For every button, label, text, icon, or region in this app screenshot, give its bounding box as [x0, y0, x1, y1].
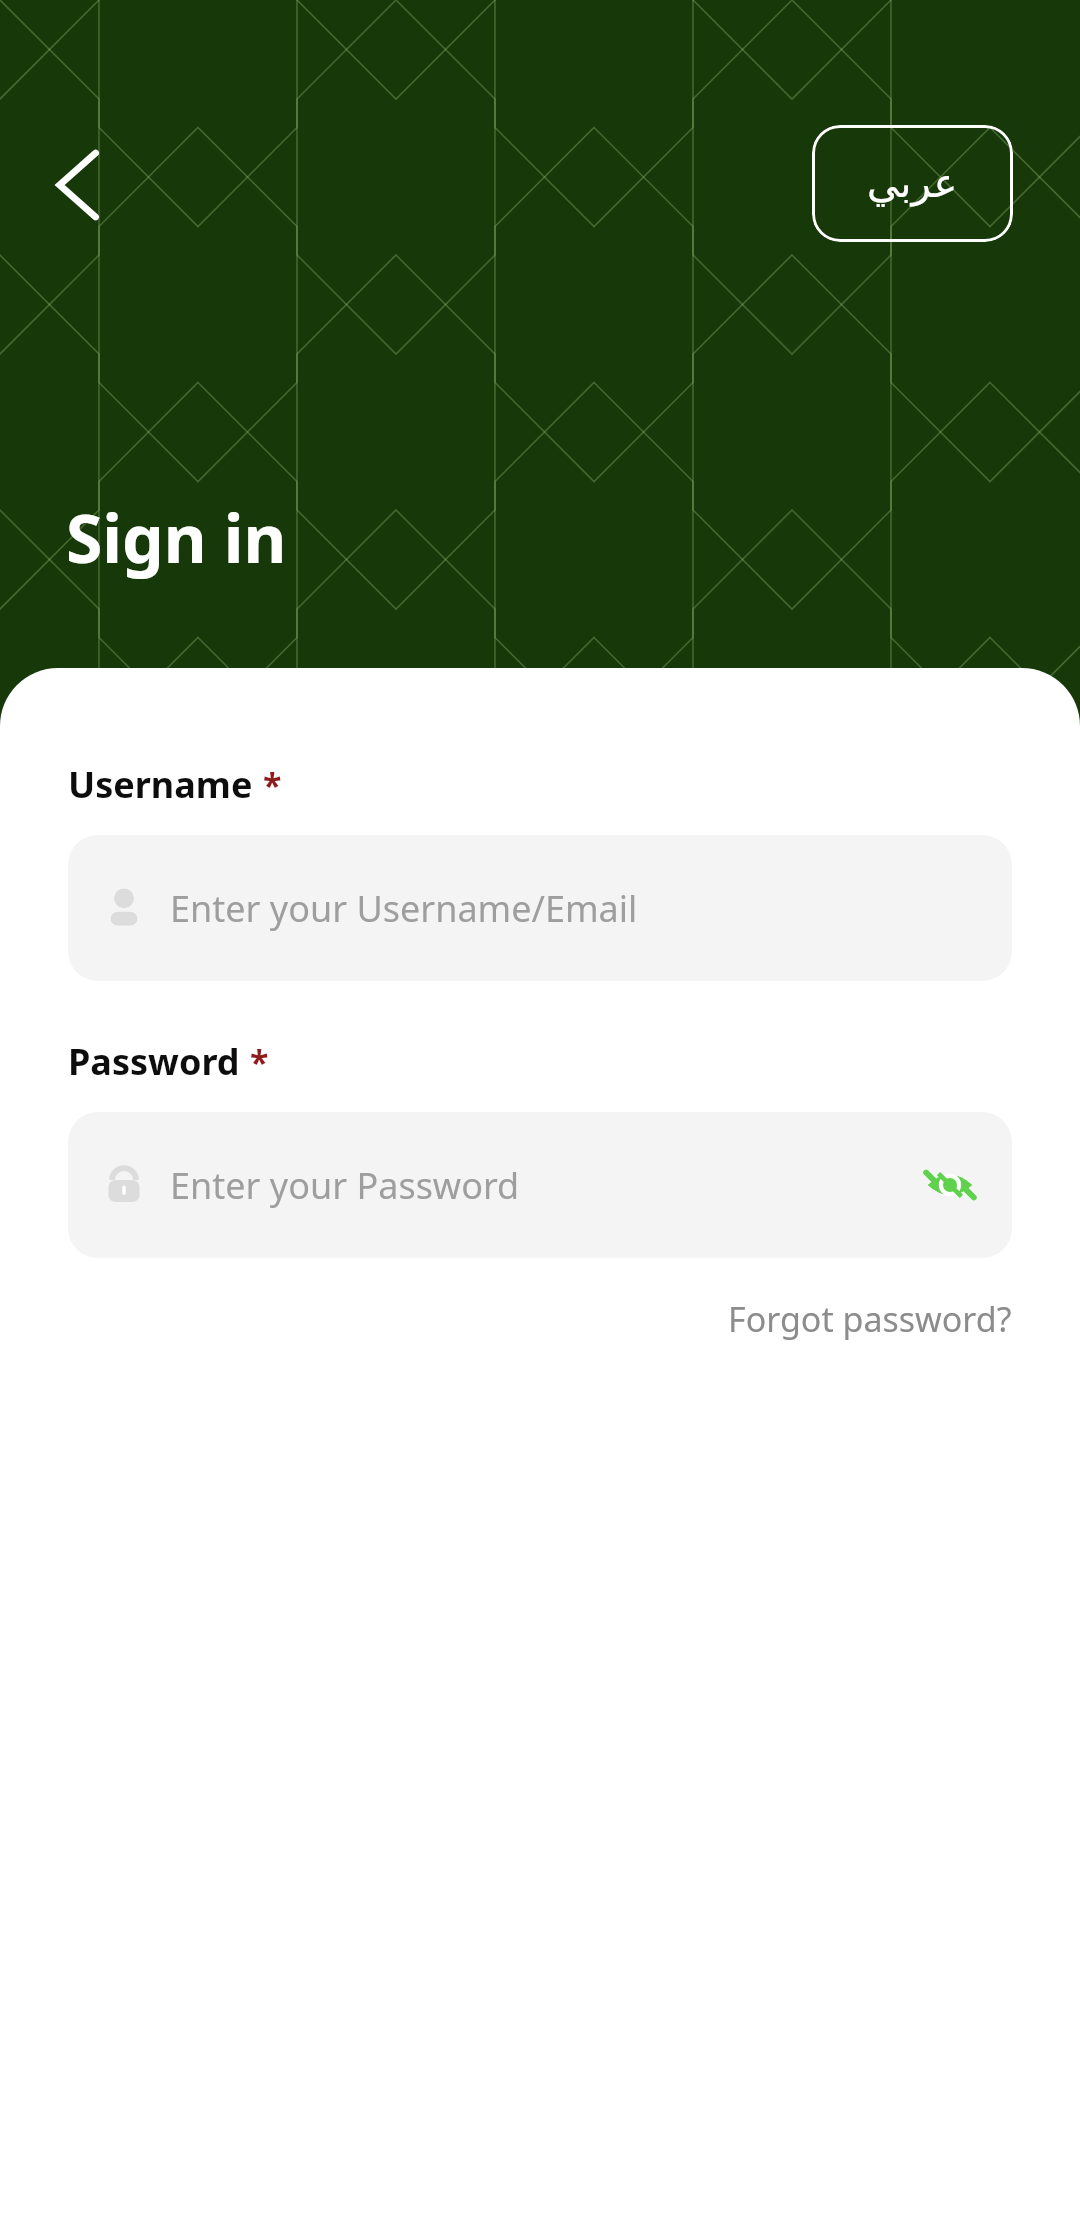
button[interactable]: Back [38, 145, 118, 225]
button[interactable]: عربي [812, 125, 1013, 242]
staticText: Password [68, 1037, 240, 1086]
staticText: * [263, 762, 282, 808]
staticText: Forgot password? [728, 1296, 1012, 1342]
button[interactable]: Show password [922, 1157, 978, 1213]
button[interactable]: Enter your Username/Email [68, 835, 1012, 981]
staticText: Username [68, 760, 253, 809]
staticText: Sign in [66, 492, 287, 582]
staticText: * [250, 1039, 269, 1085]
button[interactable]: Enter your Password [68, 1112, 1012, 1258]
staticText: Enter your Username/Email [170, 884, 978, 933]
staticText: Enter your Password [170, 1161, 922, 1210]
button[interactable]: Forgot password? [720, 1288, 1020, 1350]
staticText: عربي [867, 160, 958, 207]
